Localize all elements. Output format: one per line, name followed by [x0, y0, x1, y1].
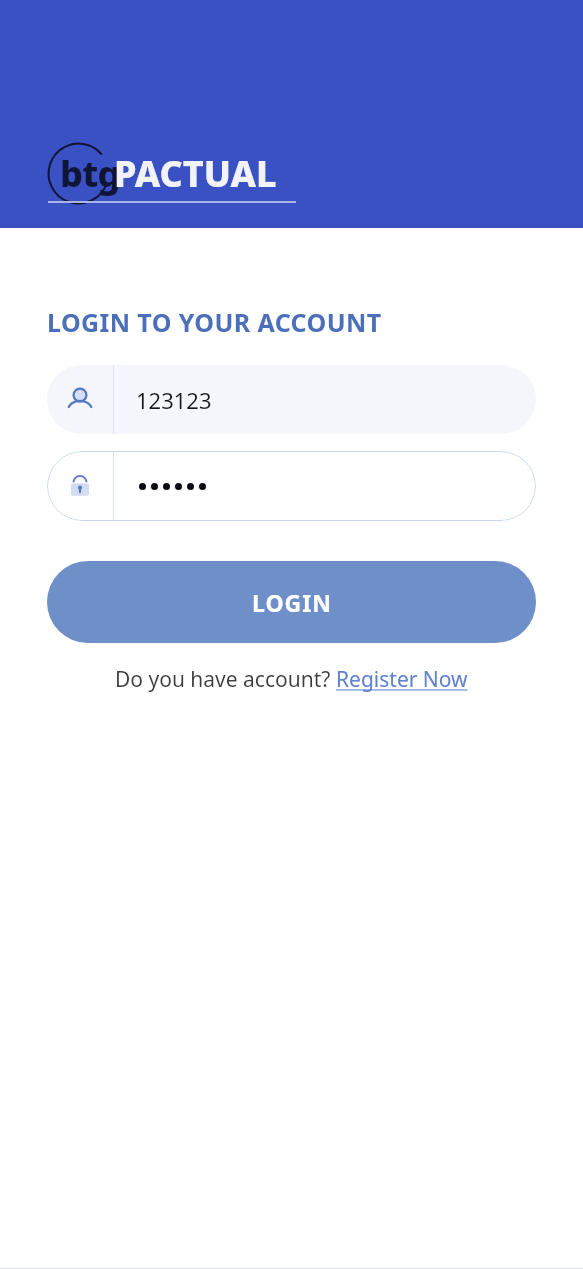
staticText: LOGIN	[252, 587, 332, 618]
staticText: Do you have account?	[115, 665, 336, 694]
button[interactable]: LOGIN	[47, 561, 536, 643]
staticText: 123123	[136, 385, 212, 415]
button[interactable]: Register Now	[336, 665, 468, 694]
button[interactable]: Password	[47, 451, 536, 521]
other: Password	[66, 472, 94, 500]
staticText: LOGIN TO YOUR ACCOUNT	[47, 305, 382, 339]
staticText: PACTUAL	[114, 149, 277, 198]
button[interactable]: User	[47, 365, 536, 434]
other: User	[65, 385, 95, 415]
staticText: btg	[60, 149, 120, 198]
